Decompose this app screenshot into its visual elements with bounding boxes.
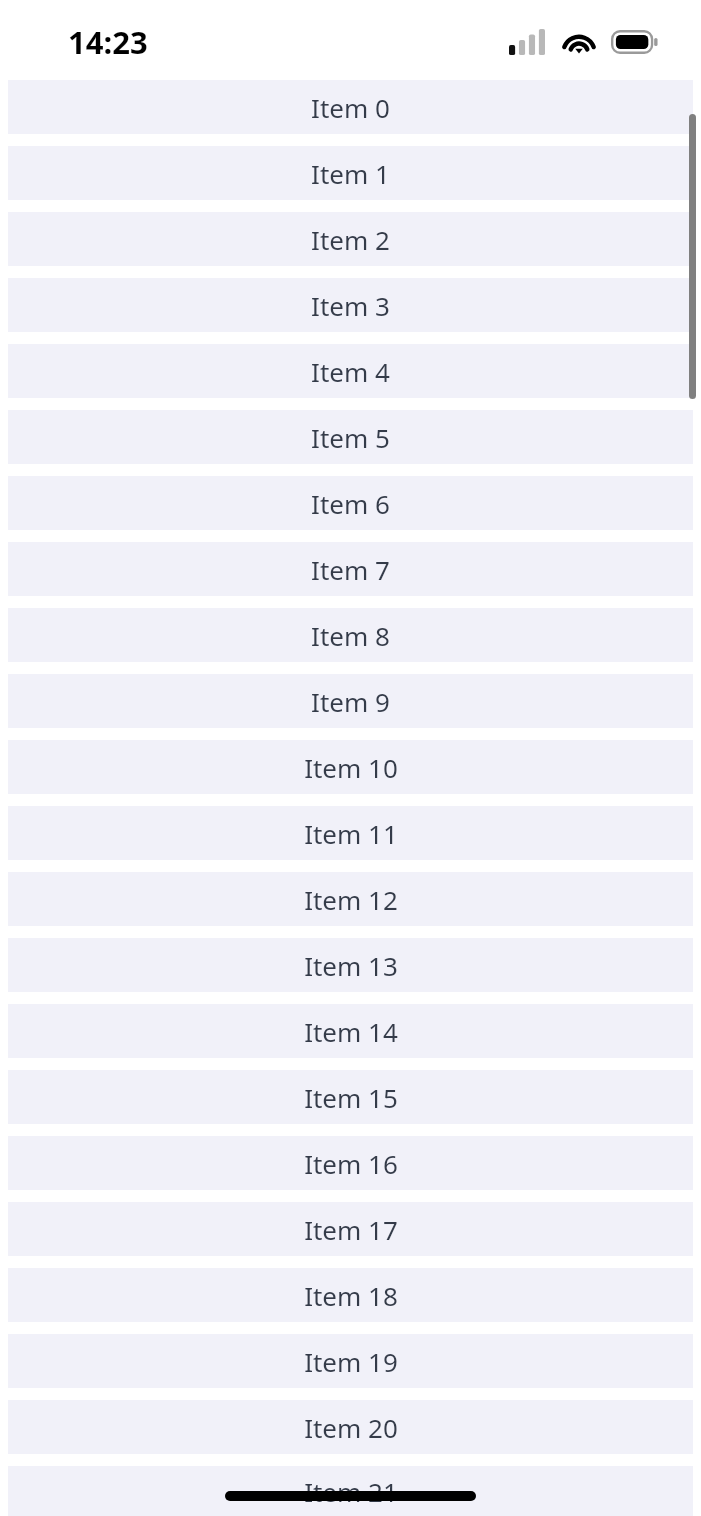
staticText: Item 13 — [304, 948, 398, 983]
staticText: Item 16 — [304, 1146, 398, 1181]
staticText: Item 3 — [311, 288, 390, 323]
staticText: Item 21 — [304, 1474, 398, 1509]
staticText: Item 10 — [304, 750, 398, 785]
staticText: Item 1 — [311, 156, 390, 191]
button[interactable]: Item 7 — [8, 542, 693, 596]
staticText: Item 14 — [304, 1014, 398, 1049]
staticText: Item 18 — [304, 1278, 398, 1313]
button[interactable]: Item 13 — [8, 938, 693, 992]
button[interactable]: Item 3 — [8, 278, 693, 332]
button[interactable]: Item 4 — [8, 344, 693, 398]
other: Battery — [611, 29, 659, 55]
button[interactable]: Item 15 — [8, 1070, 693, 1124]
button[interactable]: Item 9 — [8, 674, 693, 728]
button[interactable]: Item 20 — [8, 1400, 693, 1454]
staticText: Item 17 — [304, 1212, 398, 1247]
button[interactable]: Item 21 — [8, 1466, 693, 1516]
button[interactable]: Item 6 — [8, 476, 693, 530]
button[interactable]: Item 0 — [8, 80, 693, 134]
staticText: Item 4 — [311, 354, 390, 389]
button[interactable]: Item 14 — [8, 1004, 693, 1058]
staticText: Item 11 — [304, 816, 398, 851]
staticText: Item 20 — [304, 1410, 398, 1445]
staticText: Item 7 — [311, 552, 390, 587]
staticText: Item 19 — [304, 1344, 398, 1379]
button[interactable]: Item 19 — [8, 1334, 693, 1388]
staticText: Item 12 — [304, 882, 398, 917]
button[interactable]: Item 11 — [8, 806, 693, 860]
other: Cellular signal — [509, 29, 545, 55]
staticText: Item 2 — [311, 222, 390, 257]
other: Wi-Fi — [562, 29, 596, 55]
button[interactable]: Item 16 — [8, 1136, 693, 1190]
button[interactable]: Item 8 — [8, 608, 693, 662]
button[interactable]: Item 12 — [8, 872, 693, 926]
staticText: Item 15 — [304, 1080, 398, 1115]
staticText: Item 0 — [311, 90, 390, 125]
button[interactable]: Item 2 — [8, 212, 693, 266]
button[interactable]: Item 17 — [8, 1202, 693, 1256]
button[interactable]: Item 18 — [8, 1268, 693, 1322]
staticText: Item 8 — [311, 618, 390, 653]
staticText: 14:23 — [68, 21, 148, 63]
staticText: Item 6 — [311, 486, 390, 521]
button[interactable]: Item 10 — [8, 740, 693, 794]
staticText: Item 9 — [311, 684, 390, 719]
button[interactable]: Item 5 — [8, 410, 693, 464]
button[interactable]: Item 1 — [8, 146, 693, 200]
staticText: Item 5 — [311, 420, 390, 455]
